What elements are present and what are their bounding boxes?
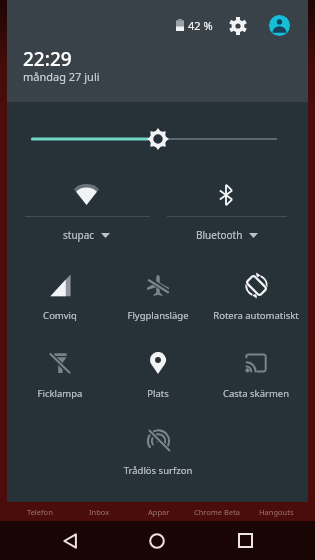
button[interactable]: Back	[49, 521, 91, 560]
staticText: Rotera automatiskt	[207, 309, 305, 322]
button[interactable]: Flygplansläge	[109, 261, 207, 323]
staticText: 42 %	[188, 18, 213, 33]
button[interactable]: Trådlös surfzon	[109, 416, 207, 478]
staticText: Plats	[109, 387, 207, 400]
staticText: Flygplansläge	[109, 309, 207, 322]
button[interactable]: Wi-Fi	[74, 184, 99, 205]
button[interactable]: Inbox	[70, 502, 129, 521]
staticText: Chrome Beta	[194, 507, 241, 517]
staticText: Trådlös surfzon	[109, 464, 207, 477]
button[interactable]: Chrome Beta	[188, 502, 247, 521]
button[interactable]: Recent apps	[224, 521, 266, 560]
button[interactable]: Comviq	[11, 261, 109, 323]
button[interactable]: Rotera automatiskt	[207, 261, 305, 323]
staticText: Casta skärmen	[207, 387, 305, 400]
button[interactable]: Plats	[109, 339, 207, 401]
staticText: Hangouts	[259, 507, 294, 517]
button[interactable]: Casta skärmen	[207, 339, 305, 401]
staticText: Bluetooth	[196, 228, 243, 242]
button[interactable]: User account	[266, 12, 292, 38]
staticText: Appar	[148, 507, 170, 517]
button[interactable]: Home	[136, 521, 178, 560]
button[interactable]: Telefon	[10, 502, 70, 521]
button[interactable]: stupac	[41, 225, 131, 245]
staticText: måndag 27 juli	[23, 69, 100, 84]
staticText: Telefon	[27, 507, 53, 517]
button[interactable]: Ficklampa	[11, 339, 109, 401]
staticText: Inbox	[89, 507, 110, 517]
staticText: stupac	[63, 228, 95, 242]
button[interactable]: Bluetooth	[182, 225, 272, 245]
staticText: Ficklampa	[11, 387, 109, 400]
staticText: Comviq	[11, 309, 109, 322]
button[interactable]: Brightness	[7, 122, 308, 156]
staticText: 22:29	[23, 46, 72, 72]
button[interactable]: Appar	[129, 502, 188, 521]
button[interactable]: Bluetooth	[219, 184, 233, 206]
button[interactable]: Settings	[225, 13, 251, 39]
button[interactable]: Hangouts	[247, 502, 306, 521]
